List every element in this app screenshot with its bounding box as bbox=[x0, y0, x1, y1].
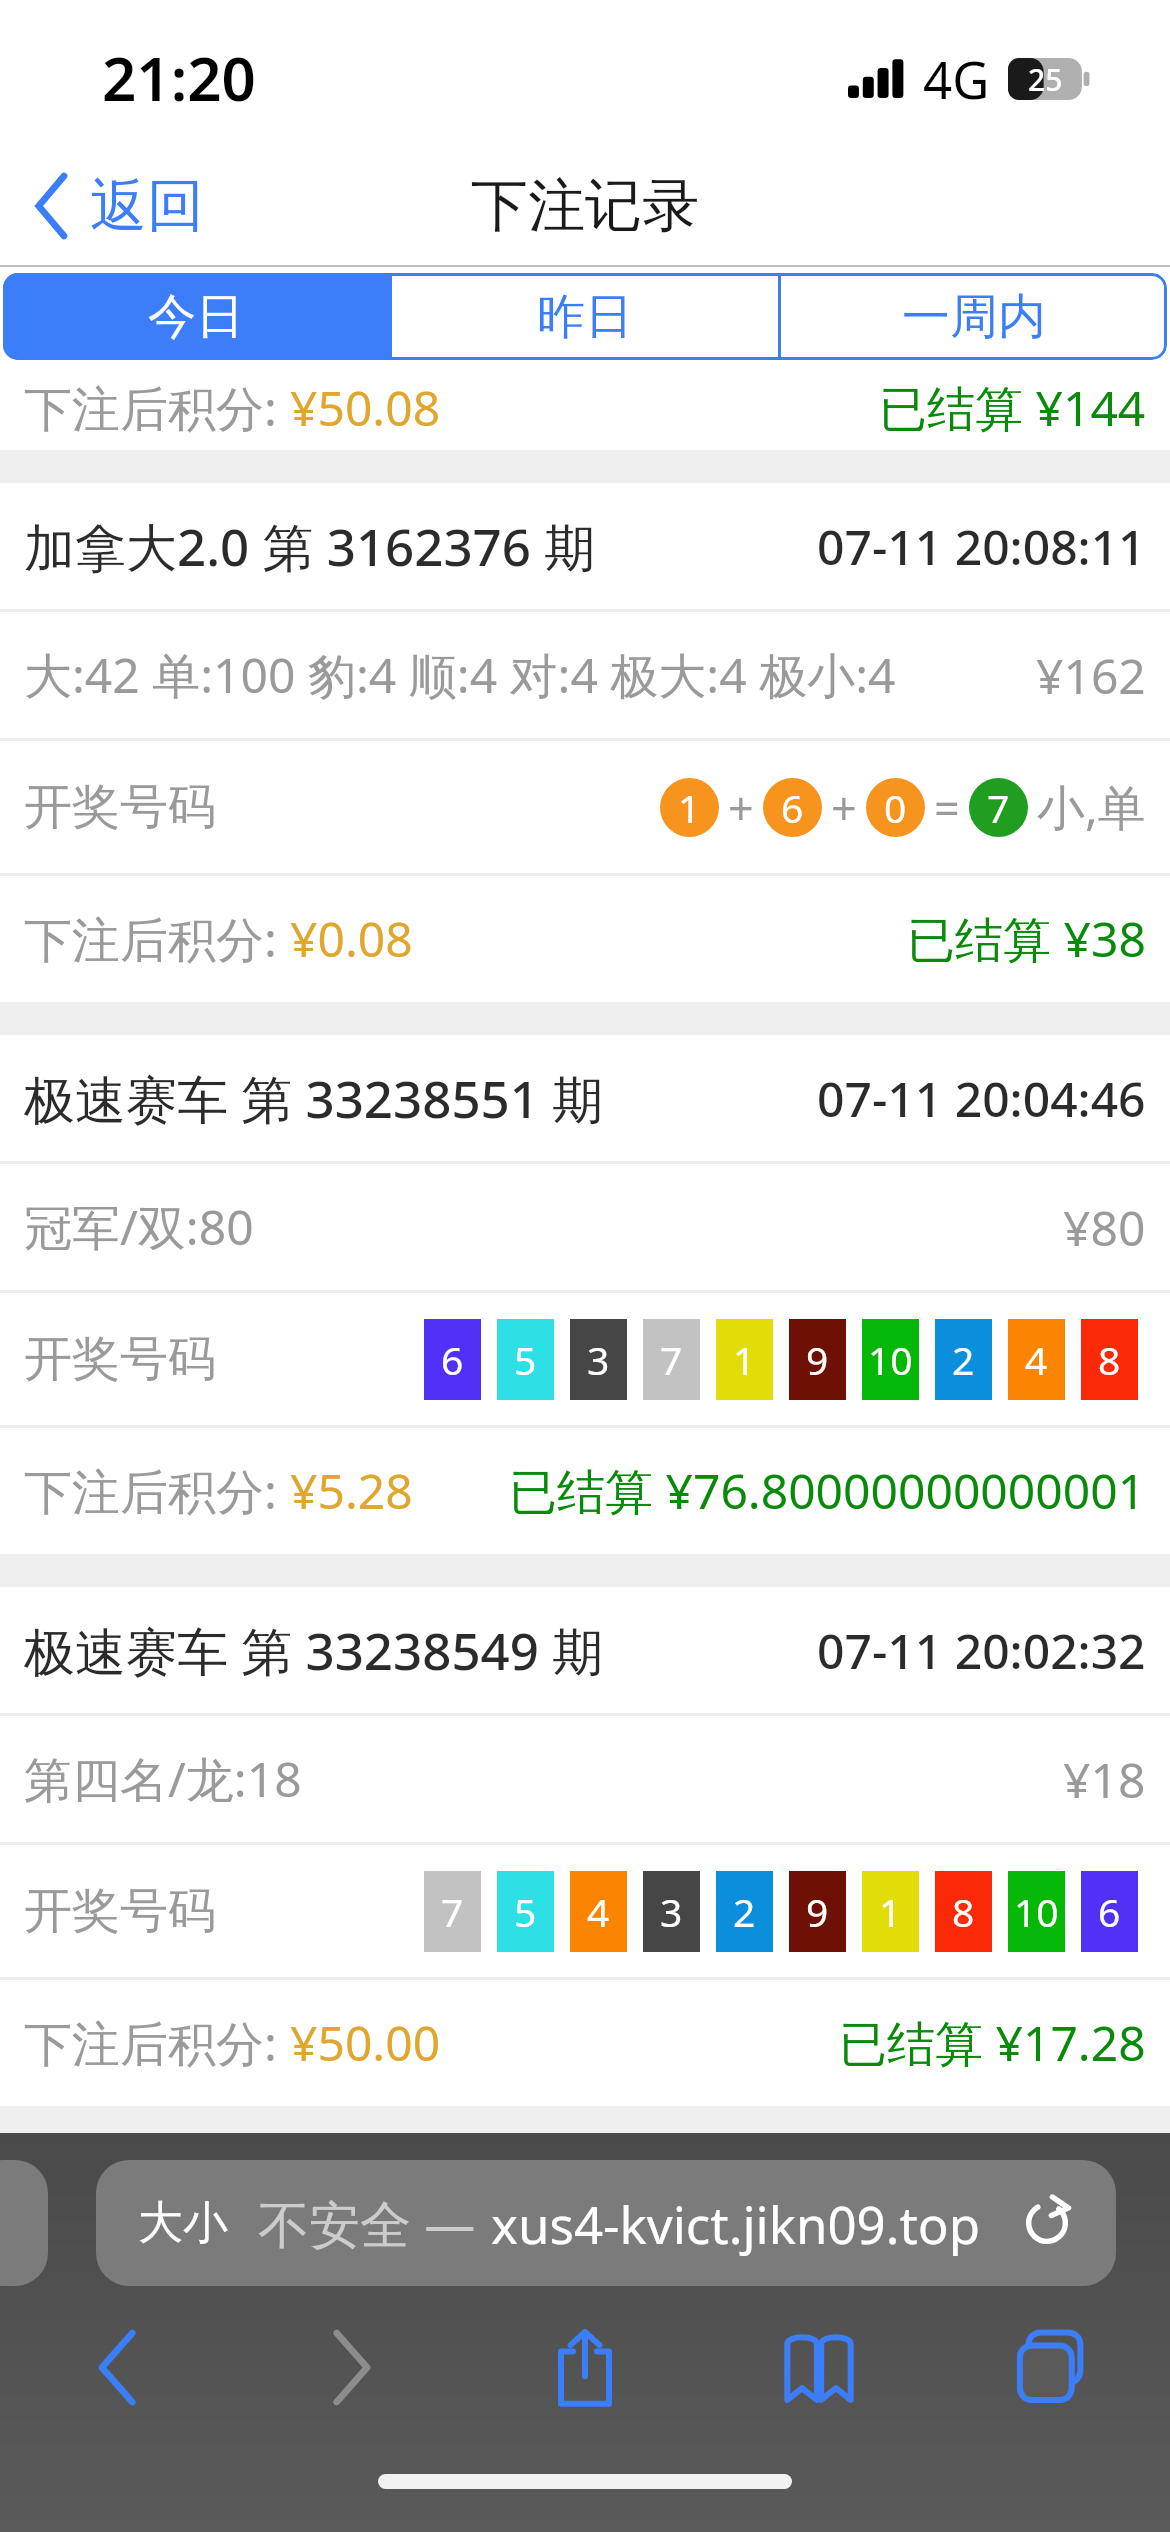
staticText: ¥80 bbox=[1063, 1195, 1146, 1260]
staticText: 8 bbox=[952, 1885, 975, 1938]
staticText: 9 bbox=[806, 1333, 829, 1386]
staticText: 10 bbox=[1014, 1885, 1059, 1938]
staticText: 昨日 bbox=[537, 287, 633, 347]
staticText: 下注后积分: bbox=[24, 375, 290, 441]
staticText: 开奖号码 bbox=[24, 777, 216, 837]
staticText: 返回 bbox=[90, 170, 204, 242]
staticText: 6 bbox=[781, 781, 804, 834]
staticText: 4 bbox=[587, 1885, 610, 1938]
staticText: 5 bbox=[514, 1333, 537, 1386]
staticText: 加拿大2.0 第 3162376 期 bbox=[24, 511, 596, 581]
staticText: 6 bbox=[1098, 1885, 1121, 1938]
staticText: 21:20 bbox=[102, 37, 256, 119]
staticText: 极速赛车 第 33238549 期 bbox=[24, 1615, 604, 1685]
staticText: 6 bbox=[441, 1333, 464, 1386]
button[interactable]: Share bbox=[516, 2298, 654, 2436]
staticText: 大小 bbox=[138, 2195, 228, 2252]
staticText: 4G bbox=[923, 44, 990, 113]
staticText: 7 bbox=[987, 781, 1010, 834]
staticText: 下注记录 bbox=[471, 170, 699, 242]
staticText: 下注后积分: bbox=[24, 906, 290, 972]
staticText: 10 bbox=[868, 1333, 913, 1386]
staticText: 已结算 ¥76.80000000000001 bbox=[509, 1458, 1146, 1524]
staticText: 下注后积分: bbox=[24, 2010, 290, 2076]
staticText: 3 bbox=[660, 1885, 683, 1938]
staticText: 小,单 bbox=[1037, 774, 1146, 840]
staticText: + bbox=[831, 777, 857, 838]
staticText: 07-11 20:04:46 bbox=[817, 1066, 1146, 1131]
staticText: 7 bbox=[441, 1885, 464, 1938]
button[interactable]: 极速赛车 第 33238549 期 bbox=[0, 1587, 1170, 2106]
staticText: ¥162 bbox=[1036, 643, 1146, 708]
staticText: 已结算 ¥144 bbox=[879, 375, 1146, 441]
staticText: ¥50.08 bbox=[290, 375, 441, 440]
staticText: 2 bbox=[952, 1333, 975, 1386]
staticText: 冠军/双:80 bbox=[24, 1194, 254, 1260]
staticText: ¥50.00 bbox=[290, 2010, 441, 2075]
staticText: 1 bbox=[733, 1333, 756, 1386]
staticText: 9 bbox=[806, 1885, 829, 1938]
button[interactable]: Back bbox=[48, 2298, 186, 2436]
staticText: 已结算 ¥17.28 bbox=[839, 2010, 1146, 2076]
button[interactable]: 返回 bbox=[0, 152, 240, 260]
staticText: 开奖号码 bbox=[24, 1329, 216, 1389]
staticText: 07-11 20:02:32 bbox=[817, 1618, 1146, 1683]
staticText: 一周内 bbox=[902, 287, 1046, 347]
staticText: + bbox=[728, 777, 754, 838]
button[interactable]: Bookmarks bbox=[750, 2298, 888, 2436]
staticText: 0 bbox=[884, 781, 907, 834]
staticText: ¥5.28 bbox=[290, 1458, 413, 1523]
button[interactable]: Forward bbox=[282, 2298, 420, 2436]
staticText: 下注后积分: bbox=[24, 1458, 290, 1524]
button[interactable]: 昨日 bbox=[392, 273, 778, 360]
staticText: 极速赛车 第 33238551 期 bbox=[24, 1063, 604, 1133]
staticText: 1 bbox=[678, 781, 701, 834]
staticText: 8 bbox=[1098, 1333, 1121, 1386]
staticText: 1 bbox=[879, 1885, 902, 1938]
staticText: 25 bbox=[1028, 59, 1063, 100]
button[interactable]: 极速赛车 第 33238551 期 bbox=[0, 1035, 1170, 1554]
staticText: 不安全 — bbox=[258, 2188, 476, 2258]
button[interactable]: Tabs bbox=[984, 2298, 1122, 2436]
button[interactable]: 今日 bbox=[3, 273, 389, 360]
staticText: 开奖号码 bbox=[24, 1881, 216, 1941]
staticText: 5 bbox=[514, 1885, 537, 1938]
staticText: ¥0.08 bbox=[290, 906, 413, 971]
staticText: xus4-kvict.jikn09.top bbox=[491, 2189, 1020, 2258]
button[interactable]: 一周内 bbox=[781, 273, 1167, 360]
staticText: 2 bbox=[733, 1885, 756, 1938]
staticText: 3 bbox=[587, 1333, 610, 1386]
staticText: 今日 bbox=[148, 287, 244, 347]
staticText: ¥18 bbox=[1063, 1747, 1146, 1812]
staticText: = bbox=[934, 777, 960, 838]
staticText: 已结算 ¥38 bbox=[907, 906, 1146, 972]
staticText: 大:42 单:100 豹:4 顺:4 对:4 极大:4 极小:4 bbox=[24, 642, 896, 708]
staticText: 第四名/龙:18 bbox=[24, 1746, 302, 1812]
staticText: 7 bbox=[660, 1333, 683, 1386]
staticText: 4 bbox=[1025, 1333, 1048, 1386]
button[interactable]: 加拿大2.0 第 3162376 期 bbox=[0, 483, 1170, 1002]
button[interactable]: 大小 bbox=[96, 2160, 1116, 2286]
staticText: 07-11 20:08:11 bbox=[817, 514, 1146, 579]
